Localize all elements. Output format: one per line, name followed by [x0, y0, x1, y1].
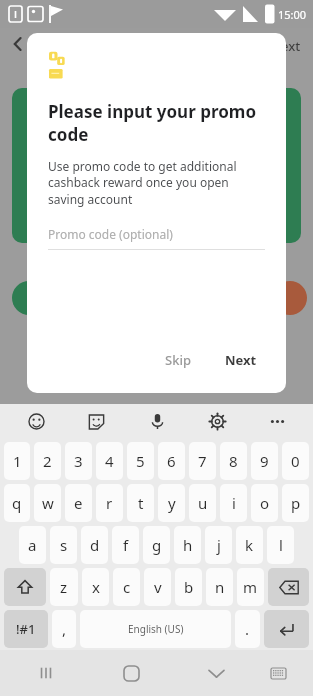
staticText: s	[60, 535, 68, 555]
staticText: d	[90, 535, 100, 555]
button[interactable]: b	[175, 568, 202, 606]
staticText: n	[215, 577, 225, 597]
staticText: z	[60, 577, 68, 597]
staticText: Skip	[165, 351, 191, 369]
staticText: Use promo code to get additional cashbac…	[48, 158, 237, 208]
staticText: .	[245, 619, 250, 639]
staticText: v	[154, 577, 162, 597]
button[interactable]: Skip	[157, 345, 199, 375]
staticText: y	[168, 493, 176, 513]
staticText: b	[184, 577, 194, 597]
button[interactable]: 1	[4, 442, 30, 480]
button[interactable]: u	[189, 484, 216, 522]
button[interactable]: 3	[65, 442, 92, 480]
button[interactable]: Backspace	[268, 568, 309, 606]
button[interactable]: s	[50, 526, 77, 564]
button[interactable]: c	[113, 568, 140, 606]
button[interactable]: w	[34, 484, 61, 522]
staticText: q	[12, 493, 22, 513]
staticText: !#1	[16, 620, 36, 638]
button[interactable]: z	[50, 568, 78, 606]
staticText: t	[138, 493, 144, 513]
staticText: 3	[74, 451, 83, 471]
button[interactable]: m	[237, 568, 264, 606]
button[interactable]: l	[267, 526, 294, 564]
button[interactable]: 2	[34, 442, 61, 480]
staticText: g	[152, 535, 162, 555]
button[interactable]: 4	[96, 442, 123, 480]
staticText: x	[92, 577, 100, 597]
staticText: 2	[43, 451, 52, 471]
staticText: Promo code (optional)	[48, 226, 173, 242]
button[interactable]: Change keyboard	[261, 656, 295, 690]
button[interactable]: 7	[189, 442, 216, 480]
staticText: 9	[260, 451, 269, 471]
button[interactable]: Hide keyboard	[199, 656, 233, 690]
button[interactable]: j	[205, 526, 232, 564]
button[interactable]: Keyboard settings	[201, 405, 233, 437]
button[interactable]: Promo code (optional)	[48, 226, 265, 250]
button[interactable]: n	[206, 568, 233, 606]
staticText: u	[198, 493, 208, 513]
button[interactable]: v	[144, 568, 171, 606]
button[interactable]: x	[82, 568, 109, 606]
staticText: w	[42, 493, 54, 513]
staticText: Please input your promo code	[48, 100, 257, 146]
staticText: 4	[105, 451, 114, 471]
button[interactable]: y	[158, 484, 185, 522]
staticText: m	[243, 577, 258, 597]
button[interactable]: o	[251, 484, 278, 522]
button[interactable]: 9	[251, 442, 278, 480]
button[interactable]: English (US)	[80, 610, 231, 648]
button[interactable]: e	[65, 484, 92, 522]
staticText: 6	[167, 451, 176, 471]
button[interactable]	[12, 88, 301, 243]
button[interactable]: f	[112, 526, 139, 564]
staticText: 5	[136, 451, 145, 471]
button[interactable]: a	[19, 526, 46, 564]
button[interactable]: Emoji	[20, 405, 52, 437]
button[interactable]: 8	[220, 442, 247, 480]
staticText: o	[260, 493, 270, 513]
staticText: 15:00	[278, 7, 307, 22]
button[interactable]: g	[143, 526, 170, 564]
button[interactable]: Sticker	[80, 405, 112, 437]
button[interactable]: ,	[52, 610, 76, 648]
staticText: Next	[225, 351, 257, 369]
staticText: 8	[229, 451, 238, 471]
staticText: ,	[62, 619, 67, 639]
button[interactable]: p	[282, 484, 309, 522]
staticText: p	[291, 493, 301, 513]
button[interactable]: 0	[282, 442, 309, 480]
staticText: c	[123, 577, 131, 597]
staticText: j	[217, 535, 221, 555]
button[interactable]: 5	[127, 442, 154, 480]
staticText: e	[74, 493, 83, 513]
button[interactable]: Shift	[4, 568, 46, 606]
staticText: 7	[198, 451, 207, 471]
button[interactable]: 6	[158, 442, 185, 480]
staticText: i	[232, 493, 236, 513]
button[interactable]: t	[127, 484, 154, 522]
button[interactable]: Back	[4, 30, 32, 58]
button[interactable]: Recent apps	[29, 656, 63, 690]
button[interactable]: q	[4, 484, 30, 522]
button[interactable]: Voice input	[141, 405, 173, 437]
button[interactable]: h	[174, 526, 201, 564]
button[interactable]: Home	[114, 656, 148, 690]
button[interactable]: i	[220, 484, 247, 522]
button[interactable]: .	[235, 610, 260, 648]
button[interactable]: Next	[271, 37, 301, 55]
staticText: r	[106, 493, 113, 513]
button[interactable]: Enter	[264, 610, 309, 648]
button[interactable]: !#1	[4, 610, 48, 648]
button[interactable]: k	[236, 526, 263, 564]
button[interactable]: More options	[261, 405, 293, 437]
button[interactable]: r	[96, 484, 123, 522]
button[interactable]: d	[81, 526, 108, 564]
staticText: k	[245, 535, 254, 555]
button[interactable]: Next	[217, 345, 265, 375]
staticText: l	[279, 535, 283, 555]
staticText: English (US)	[128, 622, 184, 636]
staticText: f	[123, 535, 129, 555]
